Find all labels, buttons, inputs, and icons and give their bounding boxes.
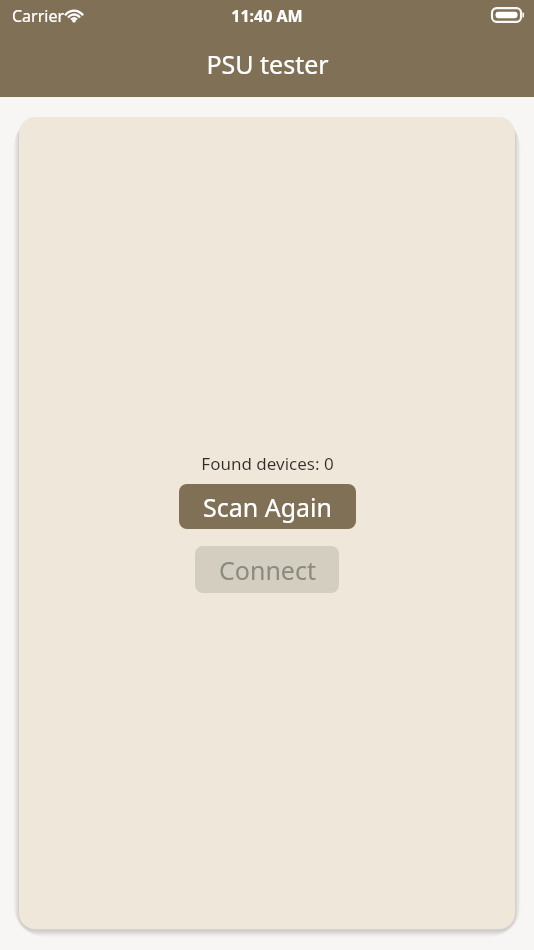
button[interactable]: Scan Again xyxy=(179,484,356,529)
staticText: PSU tester xyxy=(206,47,329,81)
staticText: 11:40 AM xyxy=(231,5,303,27)
button[interactable]: Connect xyxy=(195,546,339,593)
staticText: Connect xyxy=(219,553,316,587)
other: Battery full xyxy=(492,7,525,23)
staticText: Carrier xyxy=(12,5,65,27)
staticText: Scan Again xyxy=(203,490,332,524)
other: Wi-Fi signal xyxy=(62,7,86,23)
staticText: Found devices: 0 xyxy=(201,452,334,475)
